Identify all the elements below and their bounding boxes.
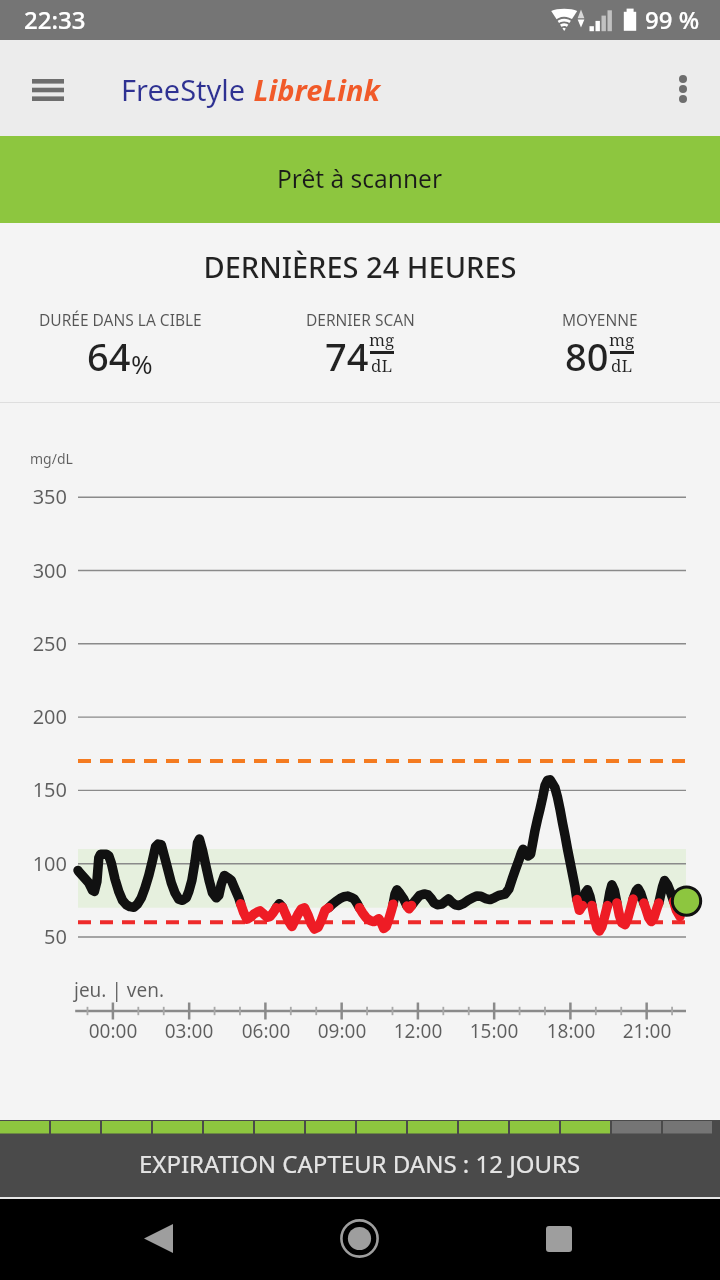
- staticText: DERNIER SCAN: [306, 309, 415, 330]
- staticText: 00:00: [68, 1018, 158, 1044]
- staticText: 80: [565, 330, 609, 382]
- button[interactable]: Prêt à scanner: [0, 136, 720, 223]
- staticText: 03:00: [144, 1018, 234, 1044]
- staticText: EXPIRATION CAPTEUR DANS : 12 JOURS: [139, 1147, 581, 1180]
- staticText: 15:00: [449, 1018, 539, 1044]
- button[interactable]: MOYENNE: [480, 309, 720, 382]
- staticText: jeu. | ven.: [74, 977, 165, 1003]
- button[interactable]: Recent apps: [523, 1203, 595, 1275]
- staticText: 18:00: [526, 1018, 616, 1044]
- button[interactable]: More options: [655, 61, 711, 117]
- staticText: 250: [0, 630, 67, 657]
- staticText: FreeStyle: [121, 70, 246, 109]
- staticText: dL: [371, 354, 393, 377]
- staticText: 06:00: [221, 1018, 311, 1044]
- staticText: 150: [0, 776, 67, 803]
- staticText: 09:00: [297, 1018, 387, 1044]
- staticText: 99 %: [645, 3, 700, 36]
- staticText: 350: [0, 483, 67, 510]
- button[interactable]: Home: [323, 1202, 395, 1274]
- staticText: Prêt à scanner: [277, 162, 443, 195]
- staticText: 12:00: [373, 1018, 463, 1044]
- button[interactable]: Back: [122, 1202, 194, 1274]
- staticText: 50: [0, 923, 67, 950]
- staticText: 21:00: [602, 1018, 692, 1044]
- staticText: 200: [0, 703, 67, 730]
- staticText: 100: [0, 850, 67, 877]
- staticText: DURÉE DANS LA CIBLE: [39, 309, 202, 330]
- button[interactable]: DURÉE DANS LA CIBLE: [0, 309, 240, 382]
- staticText: DERNIÈRES 24 HEURES: [0, 247, 720, 286]
- staticText: MOYENNE: [562, 309, 638, 330]
- staticText: 64: [87, 330, 131, 382]
- button[interactable]: Menu: [16, 58, 80, 122]
- staticText: %: [131, 346, 153, 381]
- staticText: 22:33: [24, 3, 86, 36]
- staticText: 300: [0, 557, 67, 584]
- staticText: mg: [369, 328, 395, 351]
- staticText: LibreLink: [246, 70, 380, 109]
- staticText: 74: [325, 330, 369, 382]
- staticText: dL: [611, 354, 633, 377]
- button[interactable]: DERNIER SCAN: [240, 309, 480, 382]
- staticText: mg/dL: [30, 449, 73, 468]
- staticText: mg: [609, 328, 635, 351]
